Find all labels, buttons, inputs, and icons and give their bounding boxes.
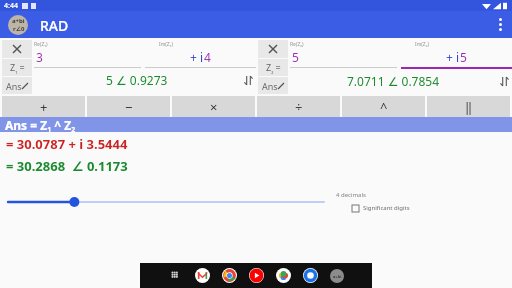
staticText: Ans (6, 80, 22, 92)
staticText: Significant digits (363, 204, 410, 212)
staticText: 4 decimals (336, 191, 366, 199)
staticText: ^ (380, 98, 388, 116)
button[interactable]: Answer (2, 77, 32, 94)
staticText: Im(Z₁) (159, 41, 173, 48)
staticText: + i (190, 49, 204, 65)
staticText: × (210, 98, 218, 116)
staticText: Im(Z₂) (415, 41, 429, 48)
staticText: = 30.0787 + i 3.5444 (6, 135, 128, 153)
button[interactable]: All apps (169, 269, 183, 283)
staticText: 3 (36, 49, 43, 65)
button[interactable]: − (87, 96, 170, 117)
button[interactable]: Clear (258, 40, 288, 58)
button[interactable]: Gmail (195, 268, 210, 283)
button[interactable]: Swap (496, 73, 512, 89)
staticText: 7.0711 ∠ 0.7854 (347, 73, 440, 89)
button[interactable]: Complex calculator (330, 269, 344, 283)
button[interactable]: × (172, 96, 255, 117)
staticText: 5 ∠ 0.9273 (106, 72, 168, 88)
button[interactable]: YouTube (249, 268, 264, 283)
button[interactable]: ^ (342, 96, 425, 117)
staticText: r∠0 (13, 25, 25, 33)
staticText: Z₂ = (266, 61, 281, 74)
staticText: ÷ (295, 98, 303, 116)
button[interactable]: Photos (276, 268, 291, 283)
staticText: RAD (40, 16, 69, 35)
staticText: a+bi (333, 274, 342, 279)
button[interactable]: Clear (2, 40, 32, 58)
button[interactable]: Messages (303, 268, 318, 283)
button[interactable]: More options (488, 11, 512, 38)
button[interactable]: Z₂ equals (258, 59, 288, 76)
staticText: Ans = Z1 ^ Z2 (5, 117, 76, 132)
staticText: 5 (460, 49, 467, 65)
button[interactable]: Decimals slider (8, 194, 324, 210)
staticText: Re(Z₂) (290, 41, 304, 48)
button[interactable]: + (2, 96, 85, 117)
staticText: a+bi (12, 17, 25, 25)
button[interactable]: Answer (258, 77, 288, 94)
button[interactable]: Significant digits (352, 204, 410, 212)
button[interactable]: ‖ (427, 96, 510, 117)
staticText: 5 (292, 49, 299, 65)
staticText: + i (446, 49, 460, 65)
button[interactable]: Swap (240, 72, 256, 88)
staticText: 4 (204, 49, 211, 65)
button[interactable]: App icon (8, 15, 28, 35)
staticText: − (125, 98, 133, 116)
staticText: Re(Z₁) (34, 41, 48, 48)
button[interactable]: Chrome (222, 268, 237, 283)
staticText: Z₁ = (10, 61, 25, 74)
staticText: + (40, 98, 48, 116)
button[interactable]: Z₁ equals (2, 59, 32, 76)
button[interactable]: ÷ (257, 96, 340, 117)
staticText: = 30.2868 ∠ 0.1173 (6, 157, 128, 175)
staticText: 4:44 (4, 1, 18, 11)
staticText: Ans (262, 80, 278, 92)
staticText: ‖ (465, 98, 473, 116)
